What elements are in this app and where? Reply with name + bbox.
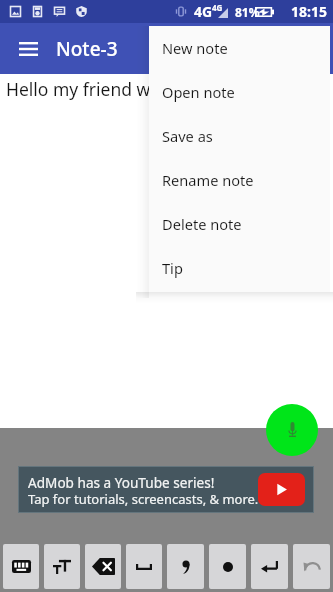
button[interactable]: Open note xyxy=(149,70,330,114)
button[interactable]: Period xyxy=(209,544,246,589)
staticText: Note-3 xyxy=(56,36,118,62)
staticText: Tap for tutorials, screencasts, & more. xyxy=(28,490,259,508)
staticText: Tip xyxy=(162,258,183,278)
button[interactable]: Keyboard xyxy=(3,544,39,589)
button[interactable]: Space xyxy=(126,544,162,589)
staticText: AdMob has a YouTube series! xyxy=(28,473,215,492)
button[interactable]: Backspace xyxy=(85,544,121,589)
button[interactable]: Text size xyxy=(44,544,80,589)
staticText: 4G xyxy=(194,2,213,21)
button[interactable]: Rename note xyxy=(149,158,330,202)
staticText: New note xyxy=(162,38,228,58)
button[interactable]: Undo xyxy=(293,544,330,589)
staticText: Save as xyxy=(162,126,213,146)
button[interactable]: Voice input xyxy=(266,404,318,456)
staticText: 81% xyxy=(235,4,260,20)
staticText: Rename note xyxy=(162,170,254,190)
staticText: Open note xyxy=(162,82,235,102)
button[interactable]: Enter xyxy=(251,544,288,589)
staticText: 18:15 xyxy=(291,2,327,21)
staticText: Hello my friend what are you doing xyxy=(6,77,296,101)
button[interactable]: New note xyxy=(149,26,330,70)
button[interactable]: Delete note xyxy=(149,202,330,246)
button[interactable]: Comma xyxy=(167,544,204,589)
button[interactable]: Tip xyxy=(149,246,330,290)
other: Play video xyxy=(258,473,305,506)
button[interactable]: AdMob has a YouTube series! xyxy=(19,467,313,512)
button[interactable]: Open navigation drawer xyxy=(10,31,46,67)
staticText: 4G xyxy=(212,2,223,13)
button[interactable]: Save as xyxy=(149,114,330,158)
staticText: Delete note xyxy=(162,214,242,234)
